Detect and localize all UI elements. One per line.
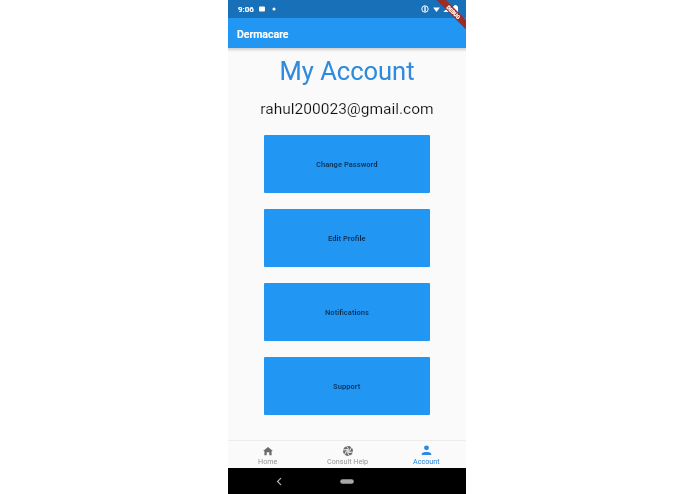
- button[interactable]: Home: [228, 441, 308, 468]
- staticText: Change Password: [316, 160, 378, 169]
- button[interactable]: Support: [264, 357, 430, 415]
- staticText: Home: [258, 457, 278, 465]
- staticText: Notifications: [325, 308, 369, 317]
- staticText: Consult Help: [327, 457, 369, 465]
- button[interactable]: Change Password: [264, 135, 430, 193]
- button[interactable]: Consult Help: [308, 441, 387, 468]
- button[interactable]: Back: [268, 471, 290, 492]
- staticText: Support: [333, 382, 361, 391]
- staticText: 9:06: [238, 5, 254, 14]
- button[interactable]: Notifications: [264, 283, 430, 341]
- staticText: Dermacare: [237, 28, 289, 40]
- button[interactable]: Edit Profile: [264, 209, 430, 267]
- staticText: Account: [413, 457, 440, 465]
- staticText: Edit Profile: [328, 234, 366, 243]
- staticText: rahul200023@gmail.com: [228, 100, 466, 118]
- button[interactable]: Account: [387, 441, 466, 468]
- staticText: My Account: [228, 56, 466, 86]
- button[interactable]: Home: [336, 471, 358, 492]
